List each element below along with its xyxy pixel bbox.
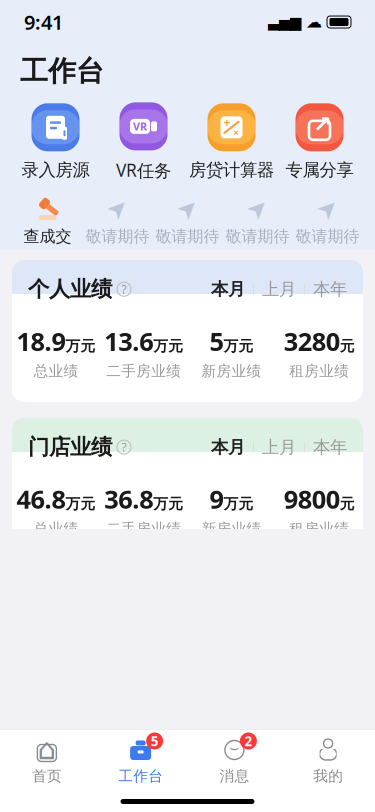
staticText: 36.8 [104, 482, 153, 516]
staticText: 二手房业绩 [106, 362, 181, 380]
staticText: 敬请期待 [155, 226, 219, 246]
staticText: 本年 [313, 279, 347, 300]
staticText: 租房业绩 [289, 520, 349, 538]
staticText: 3280 [284, 324, 340, 358]
staticText: 房贷计算器 [189, 159, 274, 181]
button[interactable]: 本月 [211, 436, 245, 458]
staticText: 9:41 [24, 9, 63, 35]
staticText: 潜在大客户todo [28, 750, 181, 778]
staticText: 本月 [211, 279, 245, 300]
button[interactable]: ➤ [82, 195, 152, 246]
staticText: 9800 [284, 482, 340, 516]
staticText: 46.8 [16, 482, 65, 516]
staticText: ➤ [107, 194, 128, 223]
button[interactable]: ➤ [292, 195, 362, 246]
staticText: 本月 [211, 436, 245, 458]
button[interactable]: 查成交 [12, 195, 82, 246]
button[interactable]: 录入房源 [11, 103, 99, 181]
staticText: VR任务 [116, 158, 171, 181]
staticText: ☁ [306, 13, 322, 31]
staticText: 本年 [313, 436, 347, 458]
button[interactable]: ➤ [152, 195, 222, 246]
staticText: 新房业绩 [201, 362, 261, 380]
button[interactable]: ⌣ [187, 737, 281, 785]
button[interactable]: VR [99, 102, 187, 181]
button[interactable]: 5 [94, 737, 188, 785]
staticText: 我的 [313, 767, 343, 785]
staticText: 二手房业绩 [106, 520, 181, 538]
staticText: 上月 [262, 279, 296, 300]
button[interactable]: 本年 [313, 436, 347, 458]
staticText: 专属分享 [285, 159, 353, 181]
button[interactable]: 说明 [117, 440, 131, 454]
staticText: 9 [209, 482, 223, 516]
staticText: ⌂ [37, 732, 56, 766]
staticText: 敬请期待 [225, 226, 289, 246]
button[interactable]: 本年 [313, 279, 347, 300]
staticText: VR [133, 119, 147, 133]
staticText: ? [121, 439, 126, 455]
staticText: ? [121, 281, 126, 297]
button[interactable]: 说明 [117, 282, 131, 296]
staticText: 上月 [262, 436, 296, 458]
staticText: 租房业绩 [289, 362, 349, 380]
staticText: 元 [340, 495, 355, 513]
staticText: 5 [209, 324, 223, 358]
staticText: 总业绩 [33, 520, 78, 538]
staticText: 5 [151, 732, 159, 750]
staticText: 18.9 [16, 324, 65, 358]
staticText: 工作台 [20, 54, 104, 88]
staticText: 敬请期待 [85, 226, 149, 246]
staticText: ➤ [247, 194, 268, 223]
button[interactable]: ↗ [275, 103, 363, 181]
staticText: 万元 [65, 495, 95, 513]
staticText: 万元 [153, 337, 183, 355]
button[interactable]: 本月 [211, 279, 245, 300]
button[interactable]: 上月 [262, 436, 296, 458]
staticText: 录入房源 [21, 159, 89, 181]
staticText: ↗ [313, 111, 332, 137]
staticText: 个人业绩 [28, 276, 112, 302]
staticText: 万元 [223, 337, 253, 355]
button[interactable]: ⌂ [0, 737, 94, 785]
button[interactable]: 我的 [281, 737, 375, 785]
staticText: 首页 [32, 767, 62, 785]
staticText: 万元 [223, 495, 253, 513]
staticText: 总业绩 [33, 362, 78, 380]
staticText: 门店业绩 [28, 434, 112, 460]
staticText: 敬请期待 [295, 226, 359, 246]
staticText: + [223, 114, 230, 130]
staticText: ⌣ [229, 740, 240, 756]
staticText: ▃▅▆ [268, 14, 301, 30]
button[interactable]: 上月 [262, 279, 296, 300]
staticText: 工作台 [118, 767, 163, 785]
staticText: ➤ [177, 194, 198, 223]
staticText: 万元 [153, 495, 183, 513]
button[interactable]: + [187, 103, 275, 181]
staticText: 元 [340, 337, 355, 355]
staticText: 万元 [65, 337, 95, 355]
staticText: 13.6 [104, 324, 153, 358]
staticText: × [233, 125, 239, 139]
button[interactable]: ➤ [222, 195, 292, 246]
staticText: ➤ [317, 194, 338, 223]
staticText: 新房业绩 [201, 520, 261, 538]
staticText: 2 [244, 732, 252, 750]
staticText: 消息 [219, 767, 249, 785]
staticText: 查成交 [23, 226, 71, 246]
